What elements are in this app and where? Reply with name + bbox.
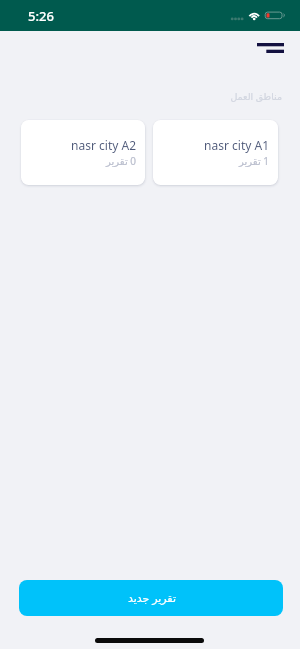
staticText: 1 تقرير — [239, 154, 269, 168]
button[interactable]: تقرير جديد — [19, 580, 283, 616]
button[interactable]: nasr city A1 — [153, 120, 278, 185]
button[interactable]: Menu — [251, 37, 289, 59]
staticText: nasr city A1 — [204, 137, 269, 153]
staticText: 0 تقرير — [106, 154, 136, 168]
staticText: nasr city A2 — [71, 137, 136, 153]
staticText: تقرير جديد — [127, 590, 176, 605]
staticText: 5:26 — [28, 7, 54, 25]
staticText: مناطق العمل — [0, 90, 282, 103]
button[interactable]: nasr city A2 — [21, 120, 145, 185]
